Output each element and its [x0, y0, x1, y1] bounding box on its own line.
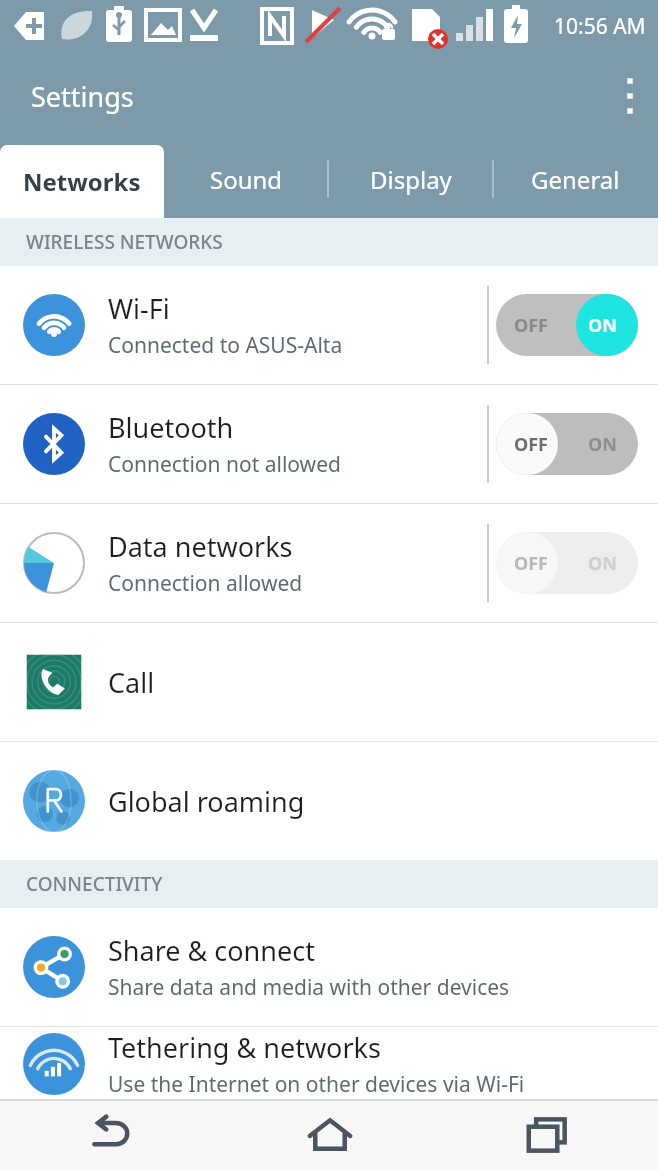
button[interactable]: Call [0, 623, 658, 741]
button[interactable]: Wi-Fi [0, 266, 658, 384]
staticText: ON [588, 432, 617, 457]
button[interactable]: Share & connect [0, 908, 658, 1026]
staticText: Connection allowed [108, 569, 303, 598]
staticText: Display [370, 163, 452, 196]
button[interactable]: Toggle Wi-Fi [496, 294, 638, 356]
button[interactable]: Sound [164, 140, 328, 218]
staticText: Global roaming [108, 783, 305, 820]
staticText: Tethering & networks [108, 1029, 381, 1066]
button[interactable]: Toggle Data networks [496, 532, 638, 594]
staticText: Share data and media with other devices [108, 973, 510, 1002]
staticText: Use the Internet on other devices via Wi… [108, 1070, 525, 1099]
staticText: OFF [514, 432, 549, 457]
staticText: 10:56 AM [554, 12, 646, 41]
staticText: OFF [514, 551, 549, 576]
staticText: Bluetooth [108, 409, 234, 446]
staticText: Data networks [108, 528, 293, 565]
staticText: CONNECTIVITY [26, 871, 163, 897]
staticText: Connected to ASUS-Alta [108, 331, 343, 360]
button[interactable]: More options [602, 52, 658, 140]
staticText: ON [588, 313, 617, 338]
staticText: ON [588, 551, 617, 576]
staticText: Networks [23, 165, 141, 198]
button[interactable]: Toggle Bluetooth [496, 413, 638, 475]
button[interactable]: Recent apps [439, 1100, 658, 1170]
button[interactable]: Bluetooth [0, 385, 658, 503]
staticText: Call [108, 664, 155, 701]
button[interactable]: Data networks [0, 504, 658, 622]
staticText: Sound [210, 163, 283, 196]
staticText: OFF [514, 313, 549, 338]
staticText: Share & connect [108, 932, 315, 969]
button[interactable]: Global roaming [0, 742, 658, 860]
button[interactable]: Tethering & networks [0, 1027, 658, 1100]
button[interactable]: Networks [0, 145, 164, 218]
button[interactable]: Display [328, 140, 493, 218]
staticText: Connection not allowed [108, 450, 341, 479]
button[interactable]: General [493, 140, 658, 218]
staticText: General [531, 163, 620, 196]
button[interactable]: Back [0, 1100, 220, 1170]
staticText: Wi-Fi [108, 290, 170, 327]
staticText: WIRELESS NETWORKS [26, 229, 223, 255]
staticText: Settings [31, 78, 134, 115]
button[interactable]: Home [220, 1100, 439, 1170]
